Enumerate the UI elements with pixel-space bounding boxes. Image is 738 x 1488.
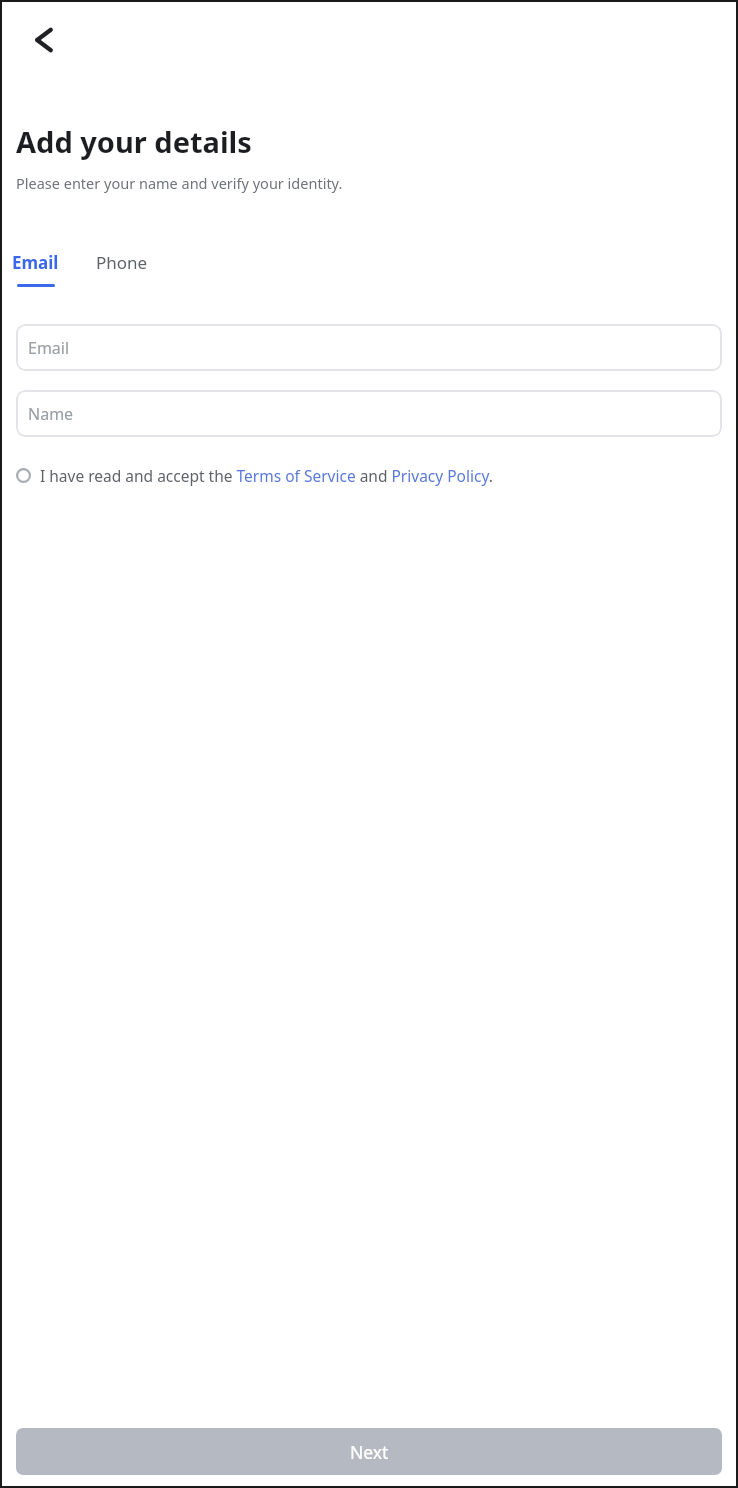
staticText: Next [350,1440,389,1464]
button[interactable]: Name [16,390,722,437]
staticText: Phone [96,251,148,274]
staticText: Name [28,403,74,425]
button[interactable]: Email [11,251,60,287]
button[interactable]: Back [14,10,74,70]
button[interactable]: Next [16,1428,722,1475]
button[interactable]: I have read and accept the Terms of Serv… [16,465,718,486]
button[interactable]: Email [16,324,722,371]
staticText: Email [12,251,59,274]
staticText: Add your details [16,122,252,161]
staticText: Email [28,337,70,359]
button[interactable]: Phone [96,251,148,274]
staticText: Please enter your name and verify your i… [16,173,343,193]
staticText: I have read and accept the Terms of Serv… [40,465,493,486]
